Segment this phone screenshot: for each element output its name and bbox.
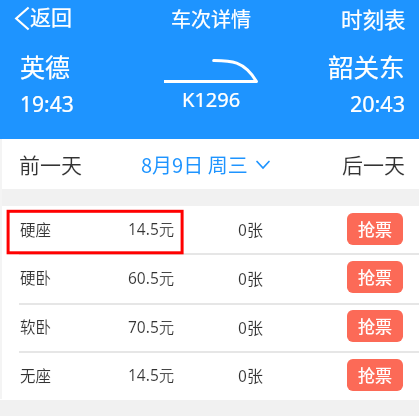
staticText: 抢票 (358, 313, 392, 338)
staticText: 硬座 (20, 218, 52, 240)
button[interactable]: 硬座 (0, 206, 419, 253)
button[interactable]: 软卧 (0, 303, 419, 351)
button[interactable]: 8月9日 周三 (135, 144, 276, 185)
staticText: 返回 (30, 1, 72, 31)
staticText: 60.5元 (128, 267, 175, 288)
staticText: 抢票 (358, 264, 392, 289)
staticText: 无座 (20, 364, 52, 386)
staticText: 硬卧 (20, 266, 52, 288)
staticText: 8月9日 周三 (141, 150, 248, 179)
other: Back (15, 7, 29, 30)
staticText: 抢票 (358, 216, 392, 241)
staticText: 英德 (20, 48, 71, 84)
staticText: 0张 (238, 315, 263, 338)
staticText: 19:43 (20, 90, 74, 119)
staticText: 14.5元 (128, 218, 175, 239)
staticText: 20:43 (350, 89, 405, 118)
staticText: 70.5元 (128, 316, 175, 337)
staticText: K1296 (182, 86, 241, 113)
staticText: 抢票 (358, 362, 392, 387)
button[interactable]: 抢票 (347, 213, 403, 245)
button[interactable]: 硬卧 (0, 253, 419, 303)
staticText: 0张 (238, 363, 263, 386)
staticText: 0张 (238, 217, 263, 240)
staticText: 14.5元 (128, 364, 175, 385)
button[interactable]: Back (0, 0, 82, 33)
staticText: 车次详情 (171, 4, 251, 33)
button[interactable]: 时刻表 (328, 3, 419, 34)
button[interactable]: 抢票 (347, 359, 403, 391)
button[interactable]: 后一天 (323, 141, 419, 187)
button[interactable]: 无座 (0, 351, 419, 400)
button[interactable]: 抢票 (347, 261, 403, 293)
button[interactable]: 前一天 (0, 141, 101, 187)
button[interactable]: 抢票 (347, 310, 403, 342)
staticText: 软卧 (20, 315, 52, 337)
staticText: 0张 (238, 266, 263, 289)
staticText: 韶关东 (328, 47, 405, 84)
